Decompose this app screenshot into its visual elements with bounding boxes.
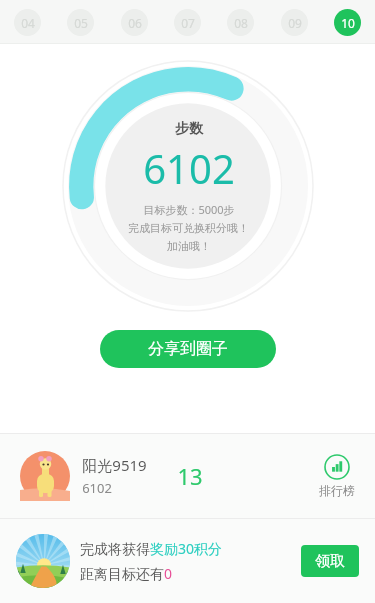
staticText: 07 [181, 15, 195, 31]
staticText: 09 [288, 15, 302, 31]
staticText: 排行榜 [319, 483, 355, 498]
staticText: 分享到圈子 [148, 339, 228, 359]
staticText: 完成将获得奖励30积分 [80, 539, 223, 558]
button[interactable]: 04 [14, 9, 41, 36]
staticText: 06 [128, 15, 142, 31]
button[interactable]: 分享到圈子 [100, 330, 276, 368]
button[interactable]: 10 [334, 9, 361, 36]
staticText: 6102 [82, 479, 112, 497]
staticText: 完成目标可兑换积分哦！ [128, 221, 249, 235]
button[interactable]: 05 [67, 9, 94, 36]
staticText: 08 [234, 15, 248, 31]
staticText: 目标步数：5000步 [143, 202, 235, 217]
button[interactable]: 领取 [301, 545, 359, 577]
staticText: 加油哦！ [167, 239, 211, 253]
staticText: 距离目标还有0 [80, 564, 173, 583]
staticText: 10 [341, 15, 355, 31]
staticText: 阳光9519 [82, 455, 147, 475]
staticText: 6102 [143, 141, 235, 195]
staticText: 领取 [315, 552, 345, 571]
button[interactable]: 阳光9519 [0, 434, 375, 518]
button[interactable]: 06 [121, 9, 148, 36]
button[interactable]: 09 [281, 9, 308, 36]
staticText: 步数 [175, 120, 203, 138]
staticText: 13 [177, 461, 203, 491]
button[interactable]: 07 [174, 9, 201, 36]
button[interactable]: 08 [227, 9, 254, 36]
staticText: 04 [21, 15, 35, 31]
staticText: 05 [74, 15, 88, 31]
button[interactable]: 排行榜 Leaderboard [319, 454, 355, 498]
